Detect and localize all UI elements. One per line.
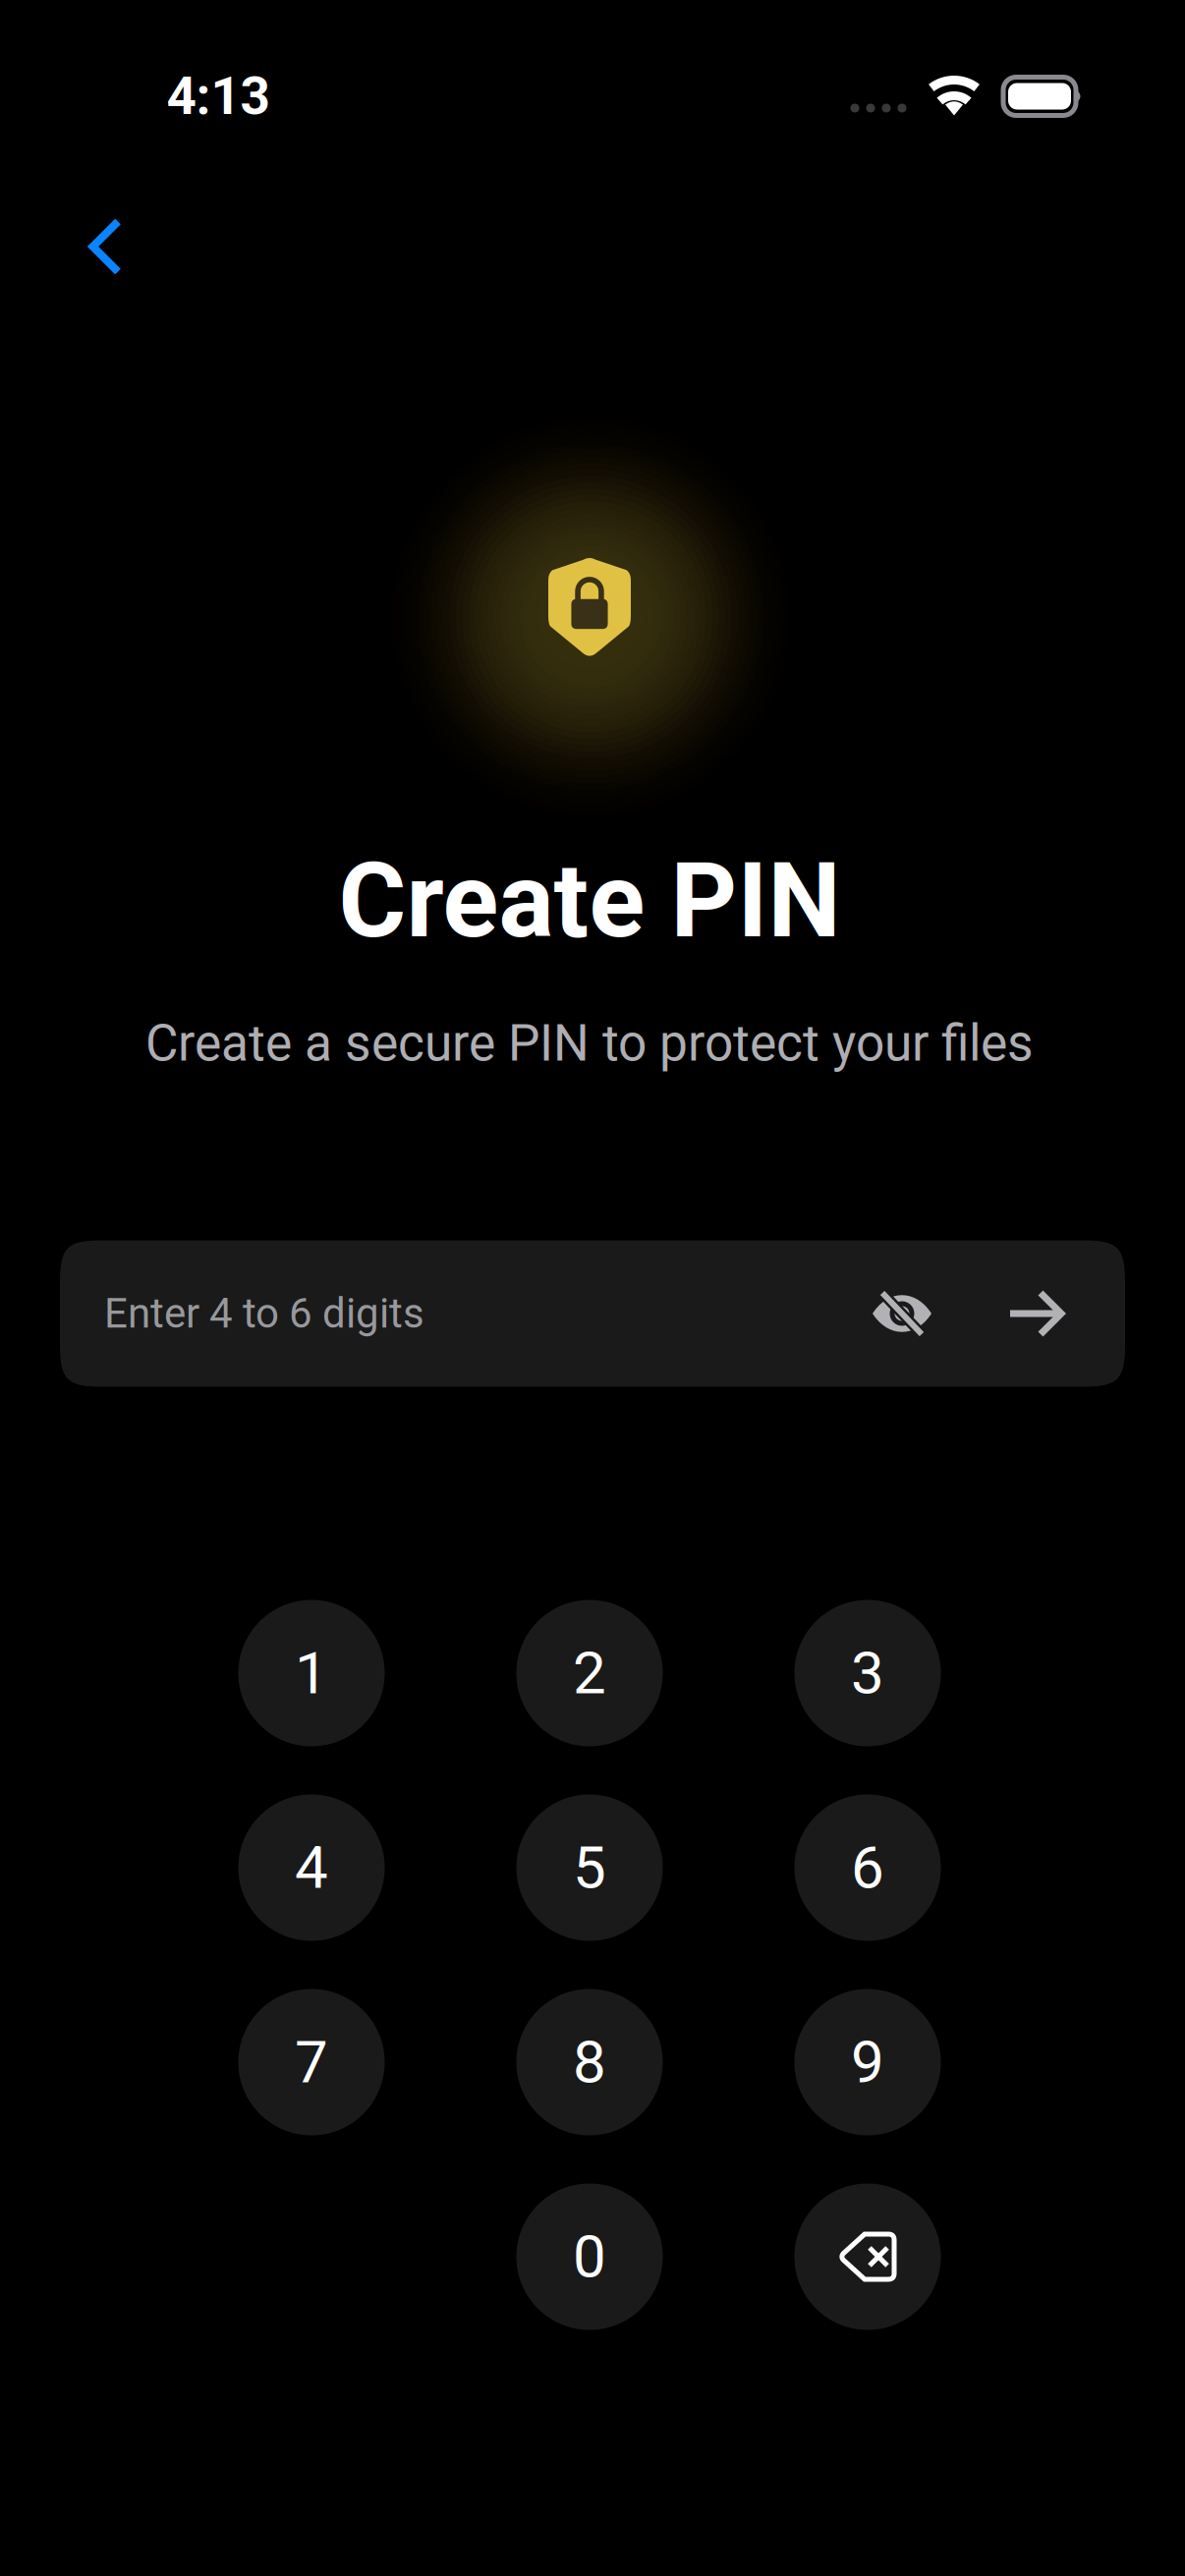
button[interactable]: 4 [238, 1794, 385, 1941]
button[interactable]: Continue [986, 1262, 1088, 1365]
staticText: 1 [295, 1639, 328, 1708]
staticText: 3 [851, 1639, 884, 1708]
staticText: Enter 4 to 6 digits [104, 1289, 424, 1338]
staticText: 0 [573, 2222, 606, 2291]
button[interactable]: 1 [238, 1600, 385, 1746]
button[interactable]: 7 [238, 1989, 385, 2135]
button[interactable]: 5 [516, 1794, 663, 1941]
staticText: 9 [851, 2028, 884, 2097]
staticText: 2 [573, 1639, 606, 1708]
staticText: Create a secure PIN to protect your file… [145, 1014, 1034, 1073]
staticText: Create PIN [339, 840, 841, 961]
button[interactable]: 9 [794, 1989, 941, 2135]
button[interactable]: Back [51, 193, 159, 301]
staticText: 4:13 [167, 66, 270, 127]
button[interactable]: Delete [794, 2184, 941, 2330]
staticText: 5 [573, 1833, 606, 1902]
button[interactable]: 8 [516, 1989, 663, 2135]
staticText: 7 [295, 2028, 328, 2097]
button[interactable]: 3 [794, 1600, 941, 1746]
staticText: 8 [573, 2028, 606, 2097]
button[interactable]: 2 [516, 1600, 663, 1746]
button[interactable]: Show PIN [851, 1262, 953, 1365]
button[interactable]: 6 [794, 1794, 941, 1941]
button[interactable]: 0 [516, 2184, 663, 2330]
staticText: 4 [295, 1833, 328, 1902]
staticText: 6 [851, 1833, 884, 1902]
